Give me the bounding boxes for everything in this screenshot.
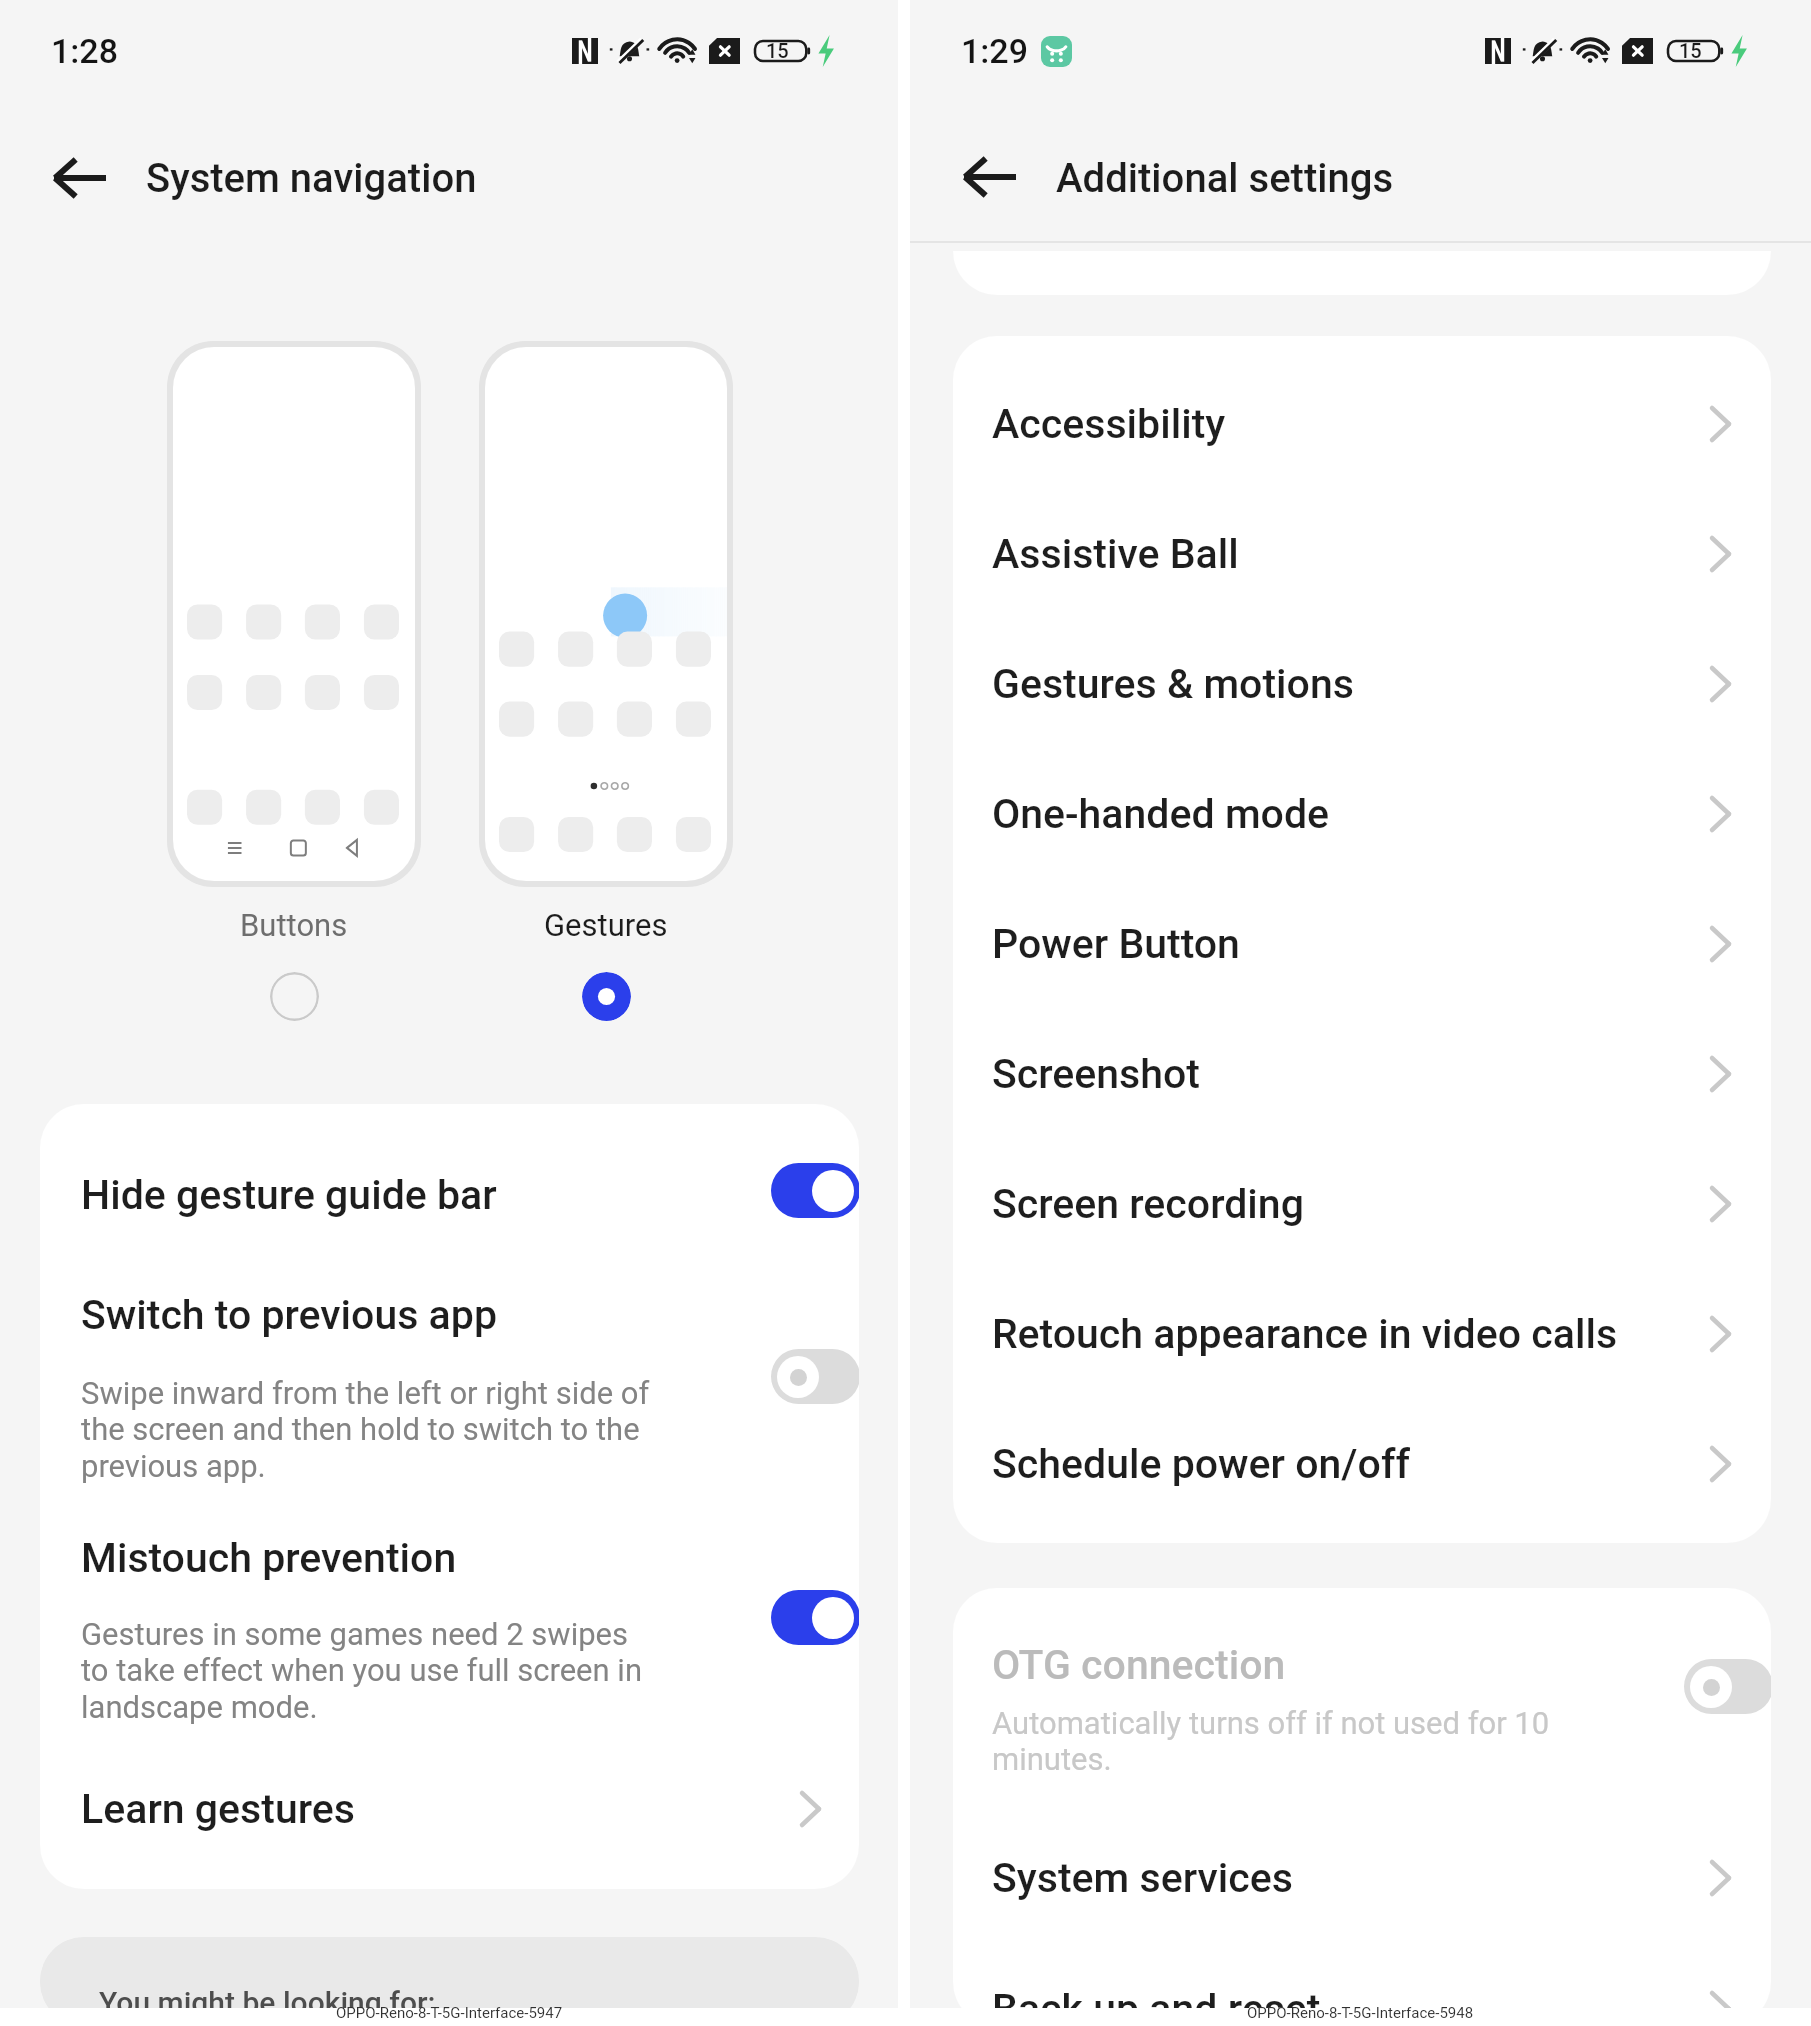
button[interactable]: Back	[938, 125, 1042, 229]
button[interactable]: Gestures	[582, 972, 631, 1021]
staticText: OTG connection	[992, 1641, 1286, 1689]
staticText: OPPO-Reno-8-T-5G-Interface-5948	[1247, 2004, 1474, 2022]
staticText: Accessibility	[992, 400, 1710, 448]
staticText: One-handed mode	[992, 790, 1710, 838]
staticText: Mistouch prevention	[81, 1534, 457, 1582]
staticText: 15	[1679, 39, 1702, 61]
button[interactable]: OTG connection	[953, 1588, 1771, 1788]
staticText: OPPO-Reno-8-T-5G-Interface-5947	[336, 2004, 563, 2022]
staticText: System services	[992, 1854, 1710, 1902]
button[interactable]: Back	[28, 126, 132, 230]
staticText: Retouch appearance in video calls	[992, 1310, 1710, 1358]
staticText: Screen recording	[992, 1180, 1710, 1228]
button[interactable]: Back up and reset	[953, 1943, 1771, 2026]
staticText: Gestures & motions	[992, 660, 1710, 708]
staticText: System navigation	[146, 155, 477, 202]
button[interactable]	[1684, 1659, 1771, 1714]
staticText: Hide gesture guide bar	[81, 1171, 497, 1219]
button[interactable]	[771, 1163, 859, 1218]
staticText: Swipe inward from the left or right side…	[81, 1375, 655, 1485]
staticText: 1:28	[51, 31, 118, 71]
button[interactable]: Mistouch prevention	[40, 1524, 859, 1761]
button[interactable]: Gestures & motions	[953, 619, 1771, 749]
button[interactable]: Switch to previous app	[40, 1277, 859, 1524]
staticText: Schedule power on/off	[992, 1440, 1710, 1488]
button[interactable]: Retouch appearance in video calls	[953, 1269, 1771, 1399]
button[interactable]	[173, 347, 415, 881]
staticText: Buttons	[240, 907, 348, 943]
button[interactable]: Assistive Ball	[953, 489, 1771, 619]
staticText: Power Button	[992, 920, 1710, 968]
button[interactable]: Learn gestures	[40, 1761, 859, 1857]
staticText: You might be looking for:	[99, 1985, 436, 2020]
button[interactable]: System services	[953, 1812, 1771, 1943]
button[interactable]: Accessibility	[953, 359, 1771, 489]
staticText: Gestures	[544, 907, 668, 943]
button[interactable]: Screen recording	[953, 1139, 1771, 1269]
button[interactable]: One-handed mode	[953, 749, 1771, 879]
button[interactable]	[771, 1349, 859, 1404]
button[interactable]: Schedule power on/off	[953, 1399, 1771, 1529]
staticText: Automatically turns off if not used for …	[992, 1705, 1566, 1778]
staticText: Learn gestures	[81, 1785, 800, 1833]
staticText: Back up and reset	[992, 1985, 1710, 2026]
staticText: Additional settings	[1056, 155, 1394, 202]
button[interactable]: Buttons	[270, 972, 319, 1021]
staticText: Screenshot	[992, 1050, 1710, 1098]
button[interactable]	[485, 347, 727, 881]
button[interactable]: Power Button	[953, 879, 1771, 1009]
button[interactable]: Screenshot	[953, 1009, 1771, 1139]
staticText: Assistive Ball	[992, 530, 1710, 578]
button[interactable]: Hide gesture guide bar	[40, 1104, 859, 1277]
staticText: 15	[766, 39, 789, 61]
staticText: Switch to previous app	[81, 1291, 497, 1339]
staticText: 1:29	[961, 31, 1028, 71]
button[interactable]	[771, 1590, 859, 1645]
staticText: Gestures in some games need 2 swipes to …	[81, 1616, 655, 1726]
